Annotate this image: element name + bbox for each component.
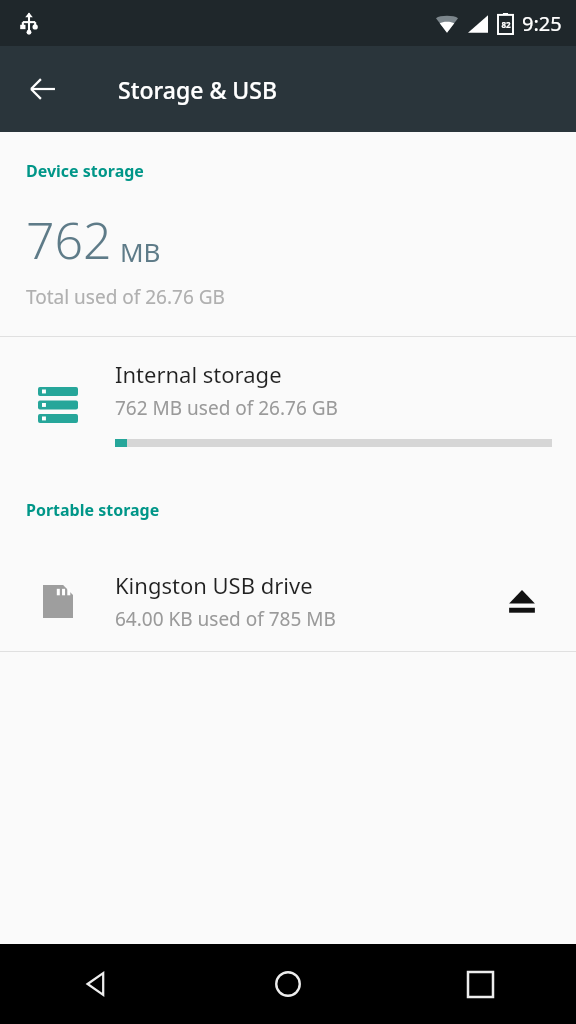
staticText: 9:25 <box>522 10 562 37</box>
staticText: Device storage <box>26 160 144 182</box>
button[interactable]: Recent apps <box>384 944 576 1024</box>
staticText: MB <box>120 234 161 269</box>
staticText: Total used of 26.76 GB <box>26 284 225 310</box>
button[interactable]: Kingston USB drive <box>0 551 576 651</box>
button[interactable]: Back <box>14 60 72 118</box>
staticText: 762 <box>26 206 112 274</box>
button[interactable]: Home <box>192 944 384 1024</box>
staticText: Internal storage <box>115 359 282 389</box>
button[interactable]: Eject <box>484 563 560 639</box>
staticText: 762 MB used of 26.76 GB <box>115 395 338 421</box>
button[interactable]: Back <box>0 944 192 1024</box>
button[interactable]: Internal storage <box>0 337 576 477</box>
staticText: 64.00 KB used of 785 MB <box>115 606 336 632</box>
staticText: 82 <box>501 19 511 30</box>
staticText: Kingston USB drive <box>115 570 313 600</box>
staticText: Storage & USB <box>118 74 277 105</box>
staticText: Portable storage <box>26 499 160 521</box>
